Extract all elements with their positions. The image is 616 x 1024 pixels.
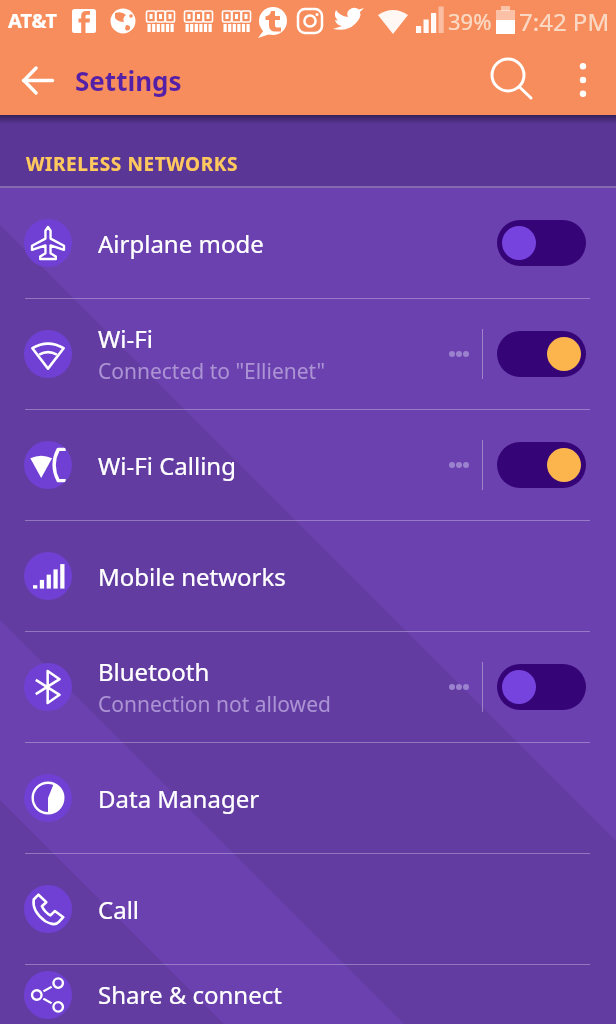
button[interactable]: Advanced settings [425, 430, 469, 500]
staticText: 39% [448, 6, 492, 36]
button[interactable]: Turn off [497, 442, 586, 488]
staticText: 7:42 PM [519, 5, 610, 38]
staticText: Connection not allowed [98, 690, 331, 719]
button[interactable]: Airplane mode [0, 188, 616, 298]
button[interactable]: Wi-Fi [0, 299, 616, 409]
button[interactable]: Mobile networks [0, 521, 616, 631]
button[interactable]: Advanced settings [425, 319, 469, 389]
staticText: Airplane mode [98, 227, 264, 260]
staticText: Bluetooth [98, 655, 210, 688]
button[interactable]: Turn on [497, 220, 586, 266]
staticText: Wi-Fi Calling [98, 449, 236, 482]
button[interactable]: Navigate up [0, 45, 75, 115]
button[interactable]: Turn on [497, 664, 586, 710]
button[interactable]: Turn off [497, 331, 586, 377]
staticText: Wi-Fi [98, 322, 153, 355]
button[interactable]: Wi-Fi Calling [0, 410, 616, 520]
button[interactable]: Call [0, 854, 616, 964]
button[interactable]: Bluetooth [0, 632, 616, 742]
button[interactable]: More options [550, 45, 616, 115]
staticText: Settings [75, 63, 182, 98]
button[interactable]: Search [474, 45, 550, 115]
staticText: AT&T [8, 7, 57, 34]
staticText: WIRELESS NETWORKS [26, 151, 239, 177]
button[interactable]: Advanced settings [425, 652, 469, 722]
button[interactable]: Data Manager [0, 743, 616, 853]
staticText: Data Manager [98, 782, 260, 815]
staticText: Call [98, 893, 140, 926]
staticText: Connected to "Ellienet" [98, 357, 326, 386]
staticText: Share & connect [98, 978, 282, 1011]
staticText: Mobile networks [98, 560, 286, 593]
button[interactable]: Share & connect [0, 965, 616, 1024]
